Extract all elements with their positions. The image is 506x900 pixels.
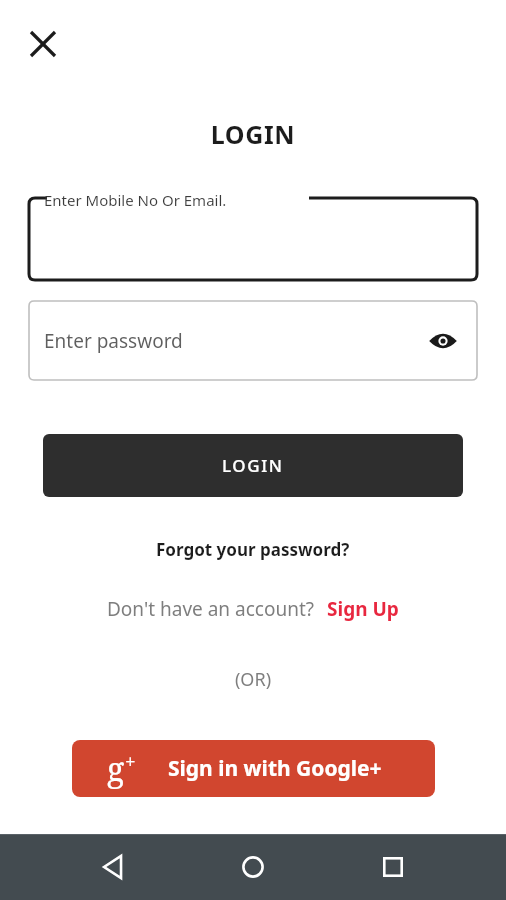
staticText: Forgot your password?	[156, 538, 350, 561]
button[interactable]: Back	[88, 841, 140, 893]
button[interactable]: Enter Mobile No Or Email.	[29, 190, 477, 280]
staticText: +	[125, 749, 136, 775]
staticText: Don't have an account?	[107, 596, 315, 622]
staticText: LOGIN	[0, 117, 506, 151]
staticText: (OR)	[0, 667, 506, 692]
staticText: Enter Mobile No Or Email.	[44, 190, 227, 210]
button[interactable]: g	[72, 740, 435, 797]
button[interactable]: Recent apps	[367, 841, 419, 893]
staticText: Sign Up	[327, 596, 399, 622]
button[interactable]: Show password	[426, 324, 460, 358]
staticText: Sign in with Google+	[168, 754, 382, 783]
button[interactable]: Close	[22, 23, 64, 65]
button[interactable]: Forgot your password?	[0, 533, 506, 565]
button[interactable]: Sign Up	[327, 596, 399, 622]
button[interactable]: LOGIN	[43, 434, 463, 497]
button[interactable]: Home	[227, 841, 279, 893]
staticText: Enter password	[44, 328, 183, 354]
staticText: g	[107, 747, 125, 791]
button[interactable]: Enter password	[29, 301, 477, 380]
staticText: LOGIN	[222, 454, 284, 477]
